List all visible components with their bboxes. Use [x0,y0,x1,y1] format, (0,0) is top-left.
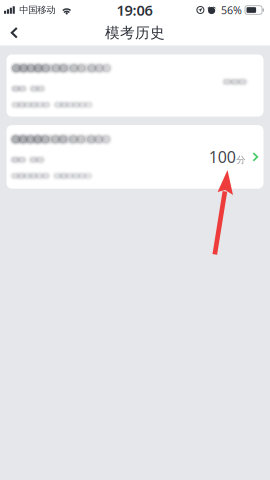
staticText: 中国移动 [19,4,55,16]
staticText: 100 [209,146,236,167]
staticText: 56% [221,3,242,17]
staticText: 19:06 [116,0,152,20]
button[interactable]: 100 [6,125,263,189]
staticText: 模考历史 [105,24,165,42]
button[interactable] [6,54,263,117]
staticText: 分 [236,154,245,166]
button[interactable]: 返回 [0,20,27,45]
